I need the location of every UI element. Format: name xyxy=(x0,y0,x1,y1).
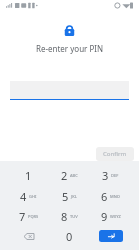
button[interactable]: 5 xyxy=(49,186,90,206)
button[interactable]: 0 xyxy=(49,226,90,246)
staticText: TUV xyxy=(70,214,78,219)
button[interactable]: Enter xyxy=(99,230,123,242)
button[interactable]: Confirm xyxy=(96,147,134,161)
staticText: 8 xyxy=(61,209,68,224)
staticText: 5 xyxy=(62,189,69,204)
staticText: 6 xyxy=(101,189,108,204)
button[interactable]: 7 xyxy=(8,206,49,226)
staticText: 4 xyxy=(20,189,27,204)
button[interactable]: 6 xyxy=(90,186,131,206)
button[interactable]: 9 xyxy=(90,206,131,226)
staticText: GHI xyxy=(29,194,37,199)
button[interactable]: 2 xyxy=(49,165,90,186)
staticText: PQRS xyxy=(28,214,39,219)
other: Locked xyxy=(64,24,75,36)
staticText: Confirm xyxy=(103,150,127,158)
button[interactable]: 3 xyxy=(90,165,131,186)
staticText: 9 xyxy=(101,209,108,224)
button[interactable]: Backspace xyxy=(8,226,49,246)
staticText: 3 xyxy=(102,168,109,183)
button[interactable]: 8 xyxy=(49,206,90,226)
staticText: MNO xyxy=(110,194,120,199)
staticText: 1 xyxy=(25,168,32,183)
staticText: DEF xyxy=(111,173,119,178)
button[interactable]: 4 xyxy=(8,186,49,206)
staticText: 2 xyxy=(61,168,68,183)
staticText: JKL xyxy=(71,194,77,199)
staticText: ABC xyxy=(70,173,78,178)
button[interactable] xyxy=(10,81,129,100)
staticText: Re-enter your PIN xyxy=(0,43,139,54)
button[interactable]: 1 xyxy=(8,165,49,186)
staticText: 7 xyxy=(19,209,26,224)
staticText: WXYZ xyxy=(110,214,121,219)
staticText: 0 xyxy=(66,229,73,244)
